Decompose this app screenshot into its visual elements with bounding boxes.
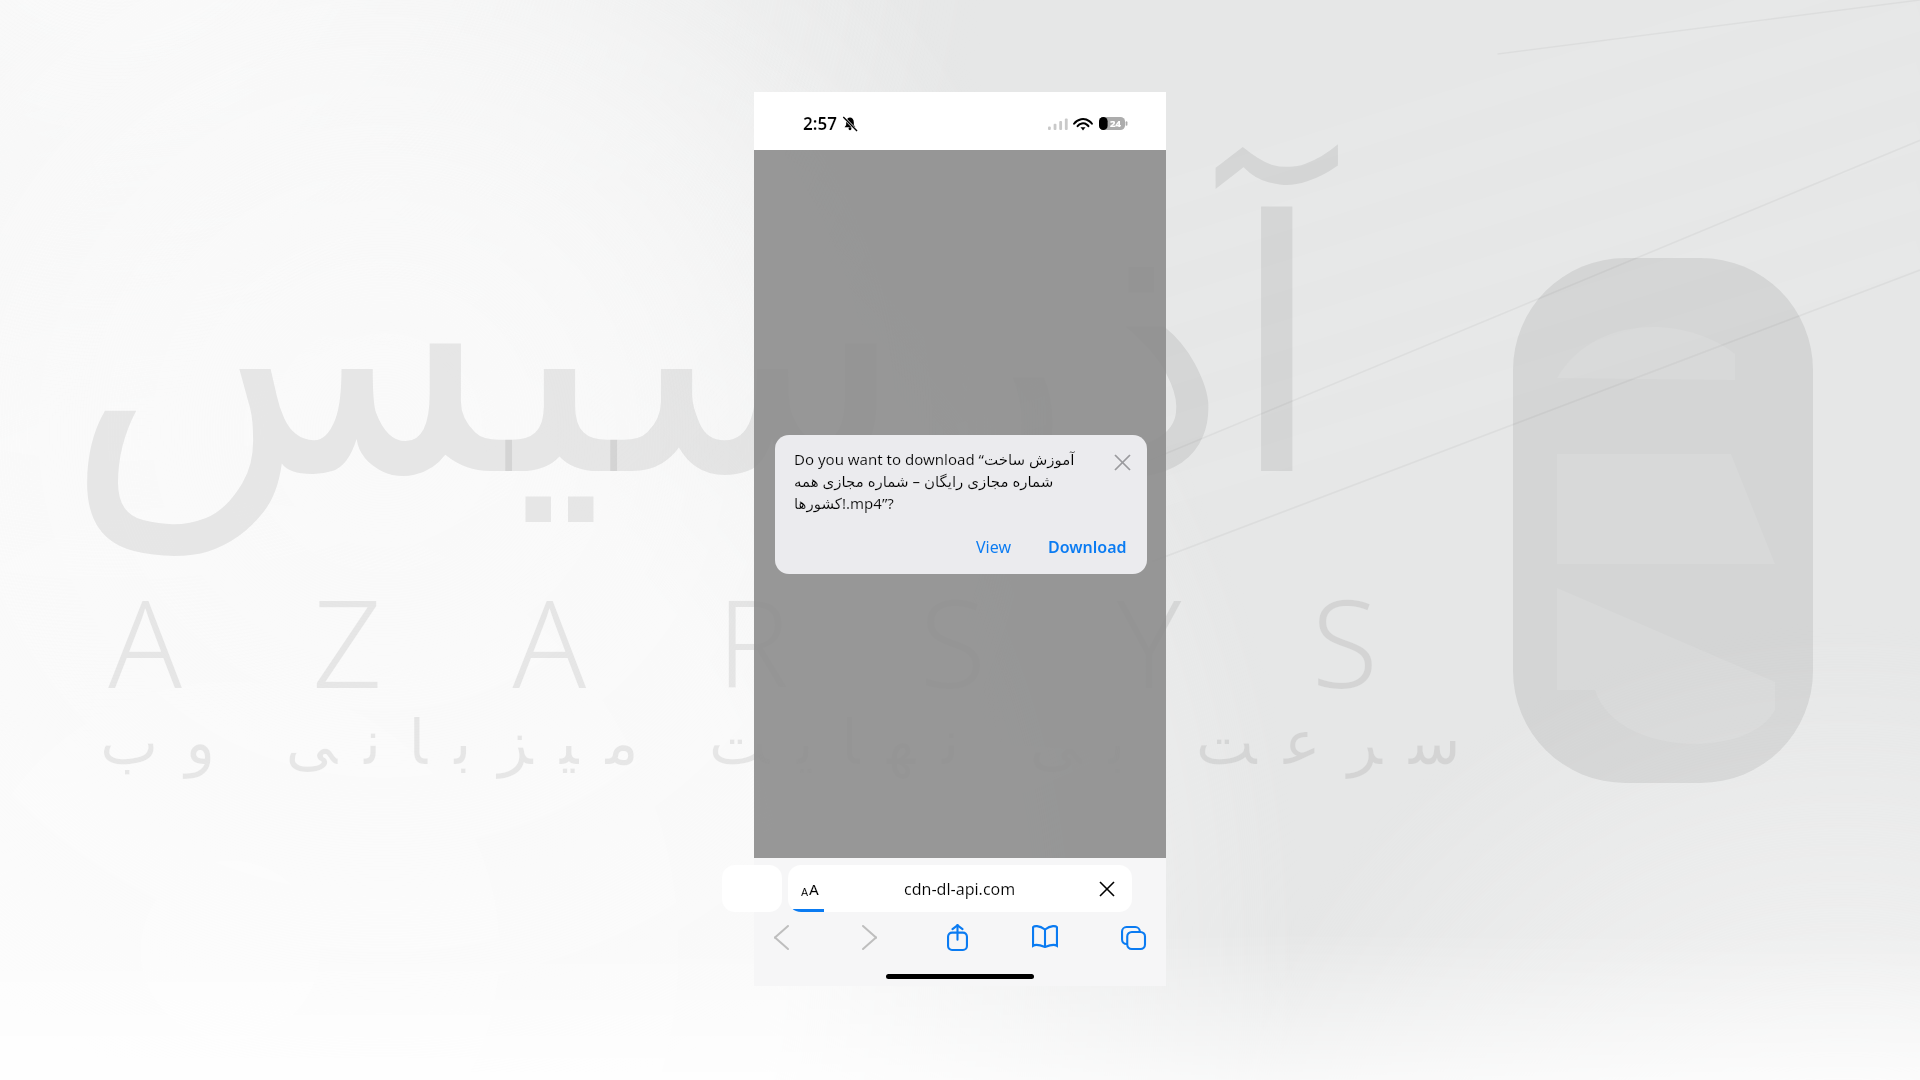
button[interactable]: Share — [913, 916, 1001, 958]
staticText: Download — [1048, 536, 1127, 558]
button[interactable]: Forward — [825, 916, 913, 958]
staticText: View — [976, 536, 1012, 558]
staticText: A — [801, 884, 809, 899]
staticText: A — [809, 879, 819, 899]
staticText: 24 — [1110, 117, 1121, 130]
button[interactable]: Download — [1040, 532, 1135, 562]
button[interactable]: Tabs — [1089, 916, 1177, 958]
staticText: cdn-dl-api.com — [904, 878, 1016, 900]
staticText: آذرسیس — [0, 148, 1435, 553]
button[interactable]: cdn-dl-api.com — [788, 865, 1132, 912]
button[interactable]: Close — [1108, 448, 1136, 476]
button[interactable]: Back — [737, 916, 825, 958]
staticText: Do you want to download “آموزش ساخت شمار… — [794, 449, 1084, 514]
staticText: AZARSYS — [108, 558, 1509, 724]
staticText: سرعت بی نهایت میزبانی وب — [100, 698, 1488, 782]
button[interactable]: Bookmarks — [1001, 916, 1089, 958]
staticText: 2:57 — [803, 112, 837, 135]
other: Stop loading — [1097, 879, 1117, 899]
button[interactable]: View — [968, 532, 1020, 562]
